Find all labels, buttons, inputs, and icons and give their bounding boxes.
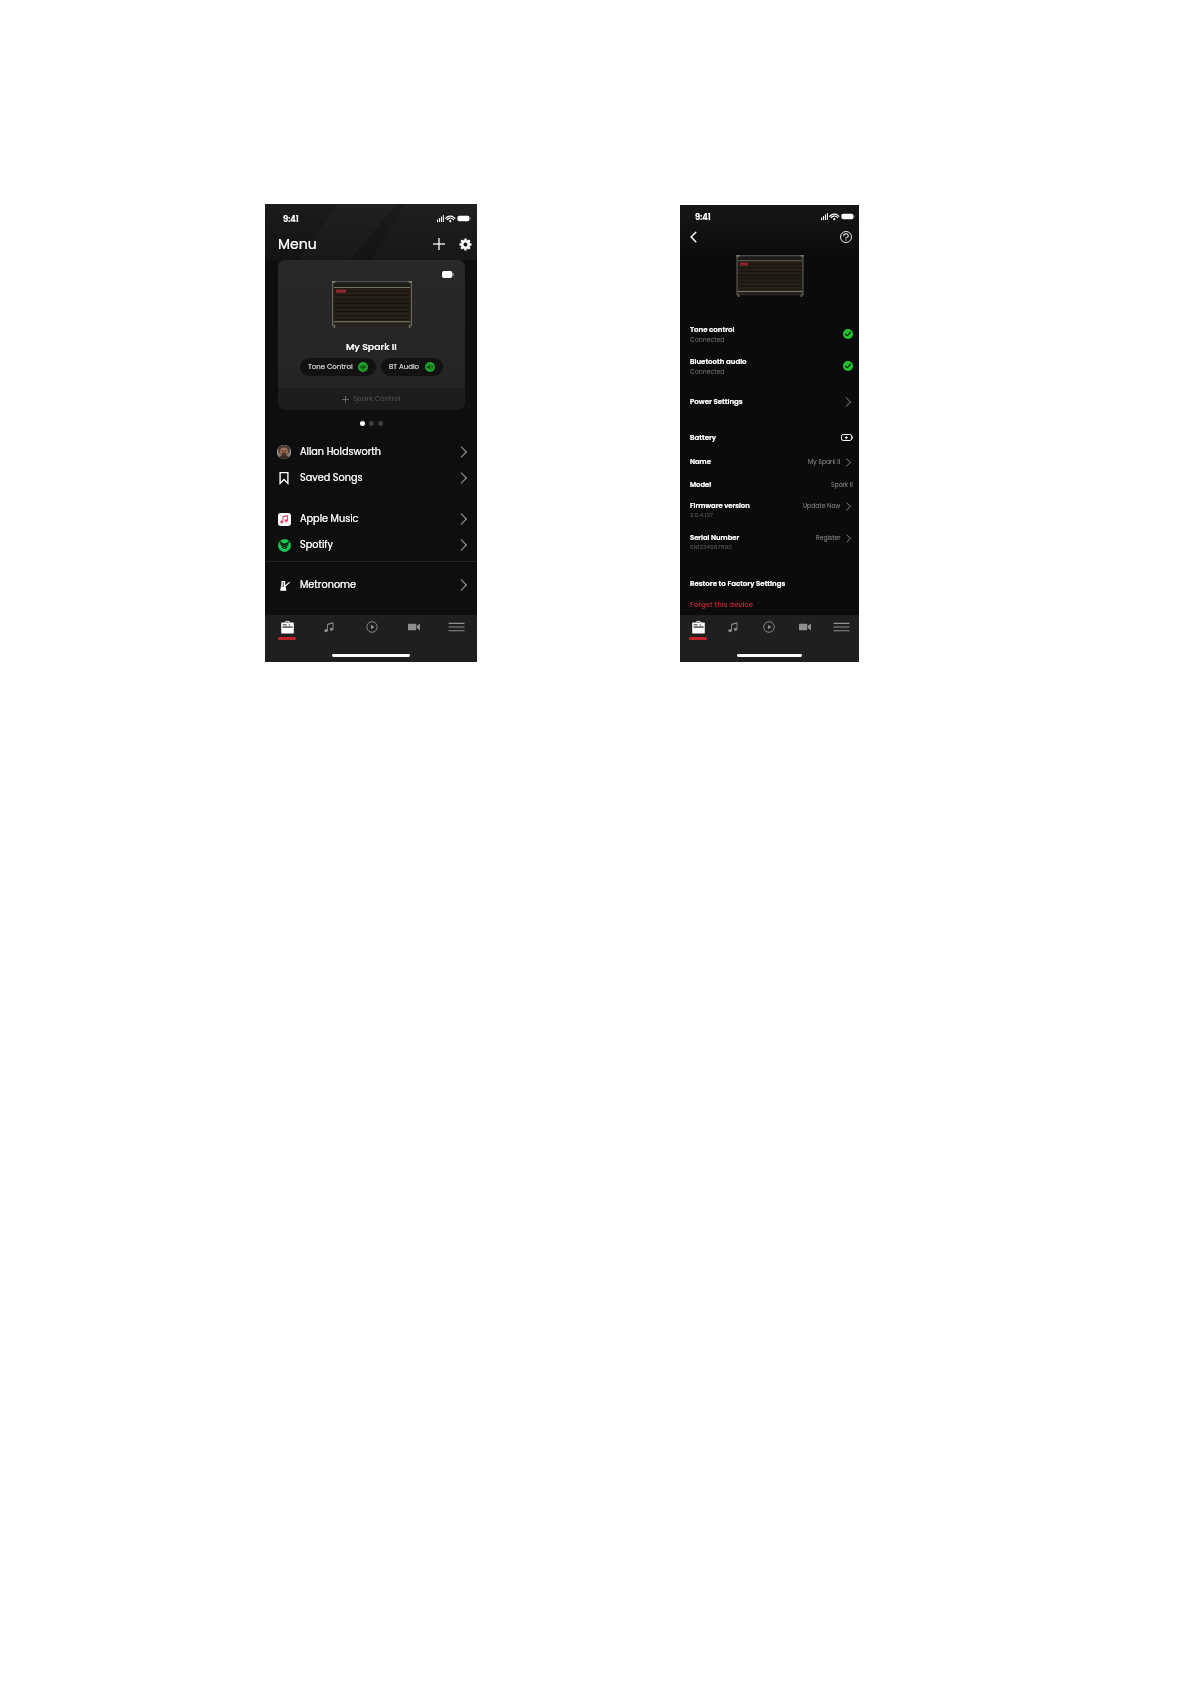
button[interactable]: Name: [680, 455, 859, 469]
staticText: My Spark II: [808, 458, 841, 467]
button[interactable]: Model: [680, 478, 859, 492]
button[interactable]: My Spark II: [278, 260, 465, 410]
button[interactable]: Tone control: [680, 322, 859, 346]
button[interactable]: Record: [351, 615, 393, 645]
button[interactable]: Amp: [265, 615, 308, 645]
button[interactable]: Spotify: [265, 528, 477, 562]
button[interactable]: Serial Number: [680, 531, 859, 553]
staticText: Connected: [690, 335, 725, 344]
button[interactable]: Add: [429, 234, 449, 254]
staticText: 9:41: [695, 211, 711, 222]
button[interactable]: Tones: [308, 615, 351, 645]
button[interactable]: More: [435, 615, 477, 645]
staticText: Connected: [690, 367, 725, 376]
staticText: Restore to Factory Settings: [690, 579, 786, 589]
staticText: Power Settings: [690, 397, 743, 407]
button[interactable]: Metronome: [265, 568, 477, 602]
staticText: Menu: [278, 234, 317, 254]
button[interactable]: Help: [839, 230, 853, 244]
staticText: Register: [816, 534, 841, 543]
staticText: Serial Number: [690, 533, 740, 543]
button[interactable]: More: [823, 615, 859, 645]
button[interactable]: Tone Control: [300, 358, 376, 376]
staticText: Firmware version: [690, 501, 750, 511]
button[interactable]: Forget this device: [680, 597, 859, 613]
staticText: Name: [690, 457, 711, 467]
button[interactable]: Amp: [680, 615, 715, 645]
button[interactable]: Back: [688, 229, 704, 245]
staticText: Allan Holdsworth: [300, 445, 382, 459]
staticText: Metronome: [300, 578, 357, 592]
button[interactable]: Video: [393, 615, 435, 645]
staticText: Spark Control: [353, 394, 401, 404]
button[interactable]: BT Audio: [381, 358, 443, 376]
staticText: My Spark II: [346, 340, 397, 353]
button[interactable]: Video: [787, 615, 823, 645]
button[interactable]: Bluetooth audio: [680, 354, 859, 378]
staticText: BT Audio: [389, 362, 420, 372]
staticText: Apple Music: [300, 512, 359, 526]
button[interactable]: Saved Songs: [265, 461, 477, 495]
staticText: Update Now: [803, 502, 841, 511]
button[interactable]: Battery: [680, 430, 859, 445]
button[interactable]: Spark Control: [278, 388, 465, 410]
button[interactable]: Firmware version: [680, 499, 859, 521]
button[interactable]: Apple Music: [265, 502, 477, 536]
button[interactable]: Power Settings: [680, 394, 859, 409]
staticText: 9:41: [283, 213, 299, 224]
staticText: Tone control: [690, 325, 735, 335]
staticText: Forget this device: [690, 600, 753, 610]
staticText: Model: [690, 480, 712, 490]
staticText: Spark II: [831, 481, 853, 490]
button[interactable]: Allan Holdsworth: [265, 435, 477, 469]
staticText: Battery: [690, 433, 717, 443]
staticText: Saved Songs: [300, 471, 363, 485]
button[interactable]: Restore to Factory Settings: [680, 576, 859, 592]
staticText: Bluetooth audio: [690, 357, 747, 367]
button[interactable]: Tones: [715, 615, 751, 645]
staticText: 2.0.4.137: [690, 511, 714, 519]
staticText: Tone Control: [308, 362, 353, 372]
staticText: SN1234567890: [690, 543, 732, 551]
button[interactable]: Settings: [455, 234, 475, 254]
staticText: Spotify: [300, 538, 333, 552]
button[interactable]: Record: [751, 615, 787, 645]
